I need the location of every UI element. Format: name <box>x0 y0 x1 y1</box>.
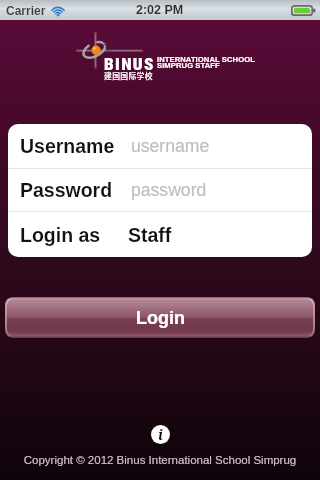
staticText: BINUS <box>104 54 155 74</box>
staticText: INTERNATIONAL SCHOOL <box>157 55 255 63</box>
staticText: i <box>158 425 163 444</box>
staticText: Carrier <box>6 4 46 17</box>
button[interactable]: Login <box>5 297 315 338</box>
staticText: Copyright © 2012 Binus International Sch… <box>0 454 320 467</box>
staticText: Login as <box>20 224 101 246</box>
button[interactable]: Information <box>151 425 170 444</box>
staticText: Login <box>136 308 185 328</box>
button[interactable]: Login as <box>8 212 312 257</box>
staticText: Password <box>20 179 113 201</box>
button[interactable]: Username <box>8 124 312 168</box>
staticText: 2:02 PM <box>136 3 184 17</box>
staticText: password <box>131 180 207 200</box>
staticText: username <box>131 136 210 156</box>
staticText: SIMPRUG STAFF <box>157 61 220 69</box>
staticText: 建国国际学校 <box>104 70 153 81</box>
staticText: Staff <box>128 224 172 246</box>
button[interactable]: Password <box>8 169 312 211</box>
staticText: Username <box>20 135 115 157</box>
